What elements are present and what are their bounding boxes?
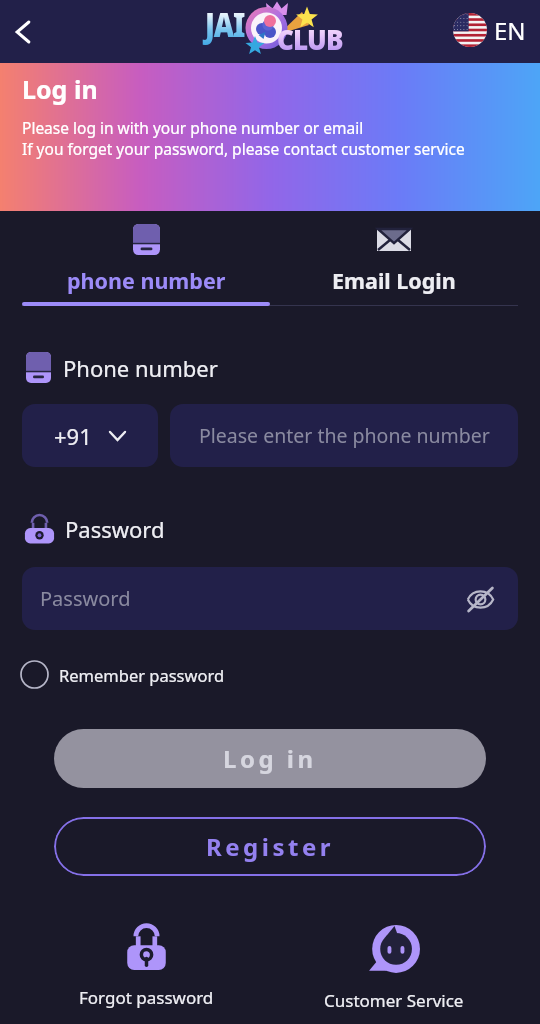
- staticText: Customer Service: [324, 989, 464, 1012]
- staticText: +91: [54, 421, 92, 451]
- button[interactable]: phone number: [22, 224, 270, 295]
- button[interactable]: Log in: [54, 729, 486, 788]
- button[interactable]: EN: [453, 15, 526, 49]
- staticText: Please log in with your phone number or …: [22, 117, 364, 138]
- staticText: Remember password: [59, 664, 225, 686]
- staticText: EN: [494, 14, 526, 47]
- staticText: phone number: [67, 266, 226, 295]
- button[interactable]: Email Login: [270, 224, 518, 295]
- staticText: Register: [206, 830, 334, 863]
- button[interactable]: Show password: [462, 581, 498, 617]
- staticText: Email Login: [332, 266, 456, 295]
- staticText: Please enter the phone number: [199, 422, 490, 449]
- staticText: Password: [40, 585, 131, 612]
- button[interactable]: Back: [3, 12, 43, 52]
- button[interactable]: Password: [22, 567, 518, 630]
- button[interactable]: Please enter the phone number: [170, 404, 518, 467]
- staticText: Log in: [22, 72, 98, 106]
- staticText: Forgot password: [79, 986, 214, 1009]
- button[interactable]: Register: [54, 817, 486, 876]
- staticText: Log in: [223, 742, 317, 775]
- button[interactable]: +91: [22, 404, 158, 467]
- staticText: Password: [65, 514, 165, 544]
- staticText: Phone number: [63, 353, 218, 383]
- staticText: JAI: [205, 1, 245, 47]
- button[interactable]: Remember password: [20, 660, 225, 689]
- button[interactable]: Forgot password: [22, 924, 270, 1009]
- staticText: If you forget your password, please cont…: [22, 138, 465, 159]
- button[interactable]: Customer Service: [270, 924, 518, 1012]
- staticText: CLUB: [277, 20, 343, 59]
